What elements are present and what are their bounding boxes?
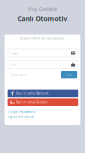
staticText: Sign in using Google+ xyxy=(16,100,49,104)
staticText: Canlı Otomotiv xyxy=(17,14,67,23)
staticText: f xyxy=(11,90,13,97)
button[interactable]: I forgot my password xyxy=(8,110,36,113)
staticText: Beni hatırla xyxy=(15,73,27,76)
staticText: Devam etmek için giriş yapınız. xyxy=(20,36,65,40)
button[interactable]: Giriş xyxy=(61,71,77,78)
staticText: Register as a new user xyxy=(8,115,35,118)
staticText: Şifre xyxy=(11,63,16,66)
staticText: I forgot my password xyxy=(8,110,36,113)
button[interactable]: G+ xyxy=(8,98,78,106)
button[interactable]: Register as a new user xyxy=(8,115,35,118)
staticText: G+ xyxy=(10,99,15,105)
staticText: Hoş Geldiniz xyxy=(27,5,57,13)
button[interactable]: Beni hatırla xyxy=(11,71,27,78)
staticText: E-Posta xyxy=(11,51,18,55)
staticText: Giriş xyxy=(66,73,72,76)
staticText: Sign in using Facebook xyxy=(16,92,48,95)
button[interactable]: f xyxy=(8,90,78,97)
